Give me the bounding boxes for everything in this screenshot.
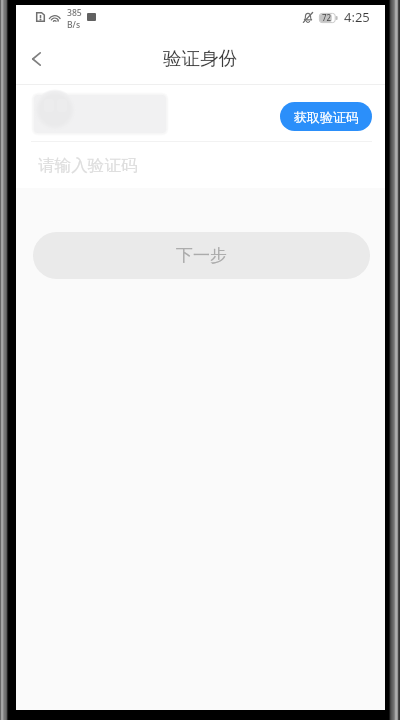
button[interactable]: Phone number field bbox=[16, 85, 385, 141]
staticText: 请输入验证码 bbox=[38, 155, 138, 176]
staticText: B/s bbox=[67, 19, 81, 31]
button[interactable]: 下一步 bbox=[33, 232, 370, 279]
staticText: 验证身份 bbox=[163, 47, 238, 70]
staticText: 72 bbox=[322, 12, 332, 23]
button[interactable]: 请输入验证码 bbox=[16, 142, 385, 188]
staticText: 获取验证码 bbox=[294, 109, 359, 125]
button[interactable]: Back bbox=[14, 37, 58, 81]
staticText: 4:25 bbox=[344, 8, 370, 26]
staticText: 下一步 bbox=[176, 245, 227, 266]
staticText: 385 bbox=[67, 7, 82, 19]
button[interactable]: 获取验证码 bbox=[280, 102, 372, 131]
